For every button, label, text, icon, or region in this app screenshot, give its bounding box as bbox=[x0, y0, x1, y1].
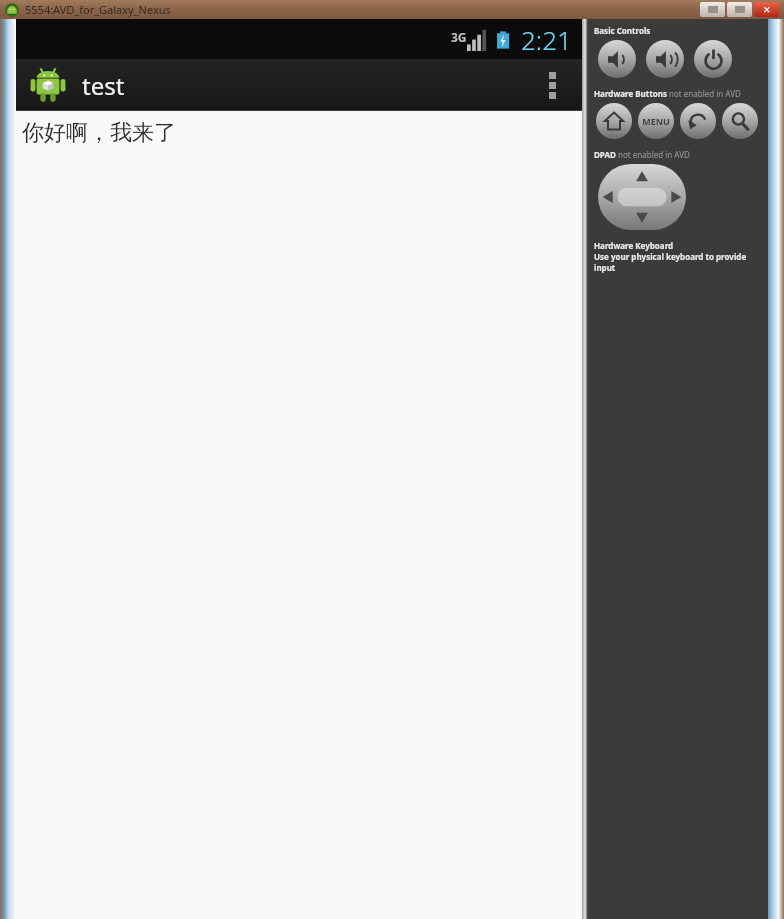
button[interactable]: Close bbox=[754, 2, 779, 17]
button[interactable]: Volume up bbox=[646, 40, 684, 78]
staticText: 3G bbox=[451, 29, 467, 45]
staticText: not enabled in AVD bbox=[616, 149, 690, 160]
button[interactable]: Maximize bbox=[727, 2, 752, 17]
button[interactable]: Power bbox=[694, 40, 732, 78]
button[interactable]: D-pad bbox=[598, 164, 686, 230]
button[interactable]: Minimize bbox=[700, 2, 725, 17]
staticText: 2:21 bbox=[521, 22, 572, 57]
staticText: Basic Controls bbox=[594, 25, 651, 36]
button[interactable]: More options bbox=[530, 59, 574, 111]
staticText: test bbox=[82, 69, 125, 102]
button[interactable]: MENU bbox=[638, 103, 674, 139]
button[interactable]: Volume down bbox=[598, 40, 636, 78]
staticText: MENU bbox=[642, 115, 670, 127]
staticText: Hardware Buttons bbox=[594, 88, 667, 99]
button[interactable]: Search bbox=[722, 103, 758, 139]
staticText: Use your physical keyboard to provide in… bbox=[594, 251, 762, 273]
staticText: 你好啊，我来了 bbox=[22, 119, 176, 147]
staticText: DPAD bbox=[594, 149, 616, 160]
button[interactable]: App icon, test bbox=[26, 63, 70, 107]
button[interactable]: Home bbox=[596, 103, 632, 139]
button[interactable]: Back bbox=[680, 103, 716, 139]
staticText: not enabled in AVD bbox=[667, 88, 741, 99]
staticText: Hardware Keyboard bbox=[594, 240, 674, 251]
staticText: ✕ bbox=[763, 5, 771, 15]
staticText: 5554:AVD_for_Galaxy_Nexus bbox=[25, 2, 171, 17]
